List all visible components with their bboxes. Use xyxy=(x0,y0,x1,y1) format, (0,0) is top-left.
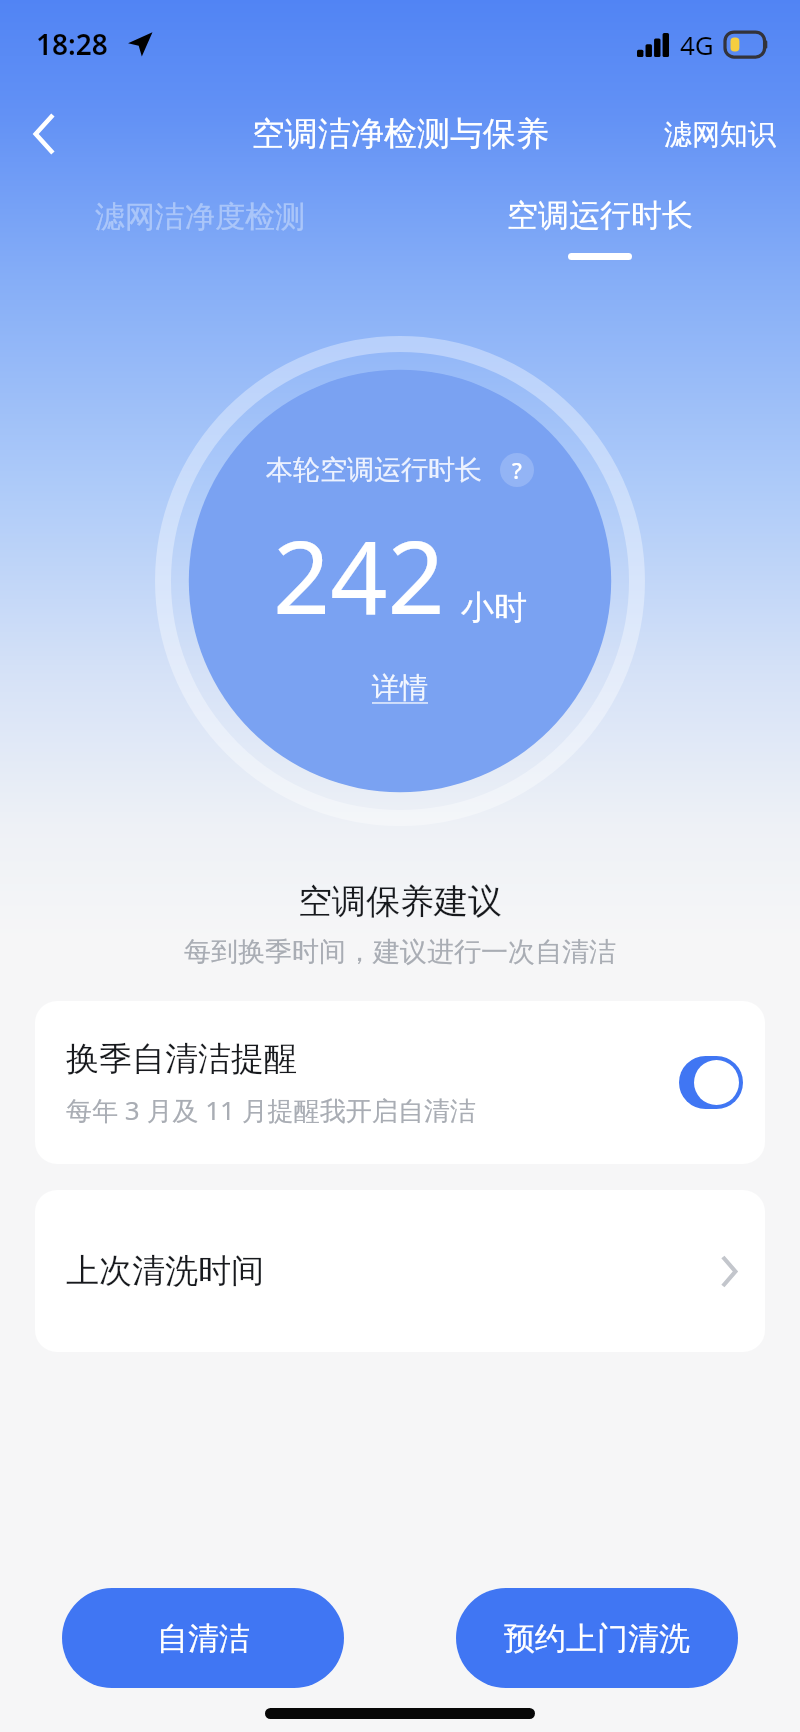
staticText: 空调洁净检测与保养 xyxy=(252,113,549,155)
button[interactable]: 空调运行时长 xyxy=(400,180,800,276)
button[interactable]: 自清洁 xyxy=(62,1588,344,1688)
button[interactable]: Help xyxy=(500,453,534,487)
staticText: 空调运行时长 xyxy=(507,196,693,235)
button[interactable]: 滤网知识 xyxy=(640,103,800,166)
button[interactable]: 换季自清洁提醒 xyxy=(35,1001,765,1164)
staticText: 预约上门清洗 xyxy=(504,1619,690,1658)
button[interactable]: 详情 xyxy=(358,665,442,710)
staticText: 上次清洗时间 xyxy=(66,1250,264,1292)
staticText: ? xyxy=(512,455,522,485)
staticText: 每年 3 月及 11 月提醒我开启自清洁 xyxy=(66,1092,476,1128)
button[interactable]: 滤网洁净度检测 xyxy=(0,180,400,276)
staticText: 滤网洁净度检测 xyxy=(95,198,305,236)
staticText: 小时 xyxy=(461,587,527,629)
staticText: 4G xyxy=(680,27,714,62)
button[interactable]: Seasonal self-clean reminder toggle xyxy=(679,1056,743,1109)
staticText: 本轮空调运行时长 xyxy=(266,453,482,487)
staticText: 空调保养建议 xyxy=(298,880,502,923)
staticText: 自清洁 xyxy=(157,1619,250,1658)
staticText: 详情 xyxy=(372,670,428,705)
staticText: 滤网知识 xyxy=(664,117,776,152)
button[interactable]: 上次清洗时间 xyxy=(35,1190,765,1352)
button[interactable]: Back xyxy=(12,102,76,166)
button[interactable]: 预约上门清洗 xyxy=(456,1588,738,1688)
staticText: 每到换季时间，建议进行一次自清洁 xyxy=(184,935,616,969)
staticText: 换季自清洁提醒 xyxy=(66,1038,297,1080)
staticText: 242 xyxy=(273,507,445,643)
staticText: 18:28 xyxy=(36,25,108,63)
